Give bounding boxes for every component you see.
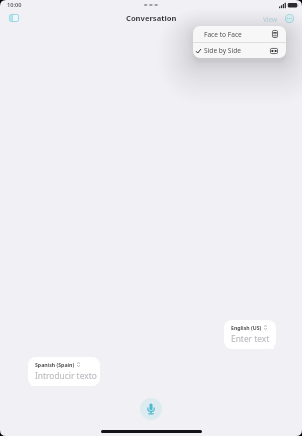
button[interactable]: English (US) (224, 320, 276, 349)
button[interactable]: View (263, 15, 277, 24)
button[interactable]: Record speech (140, 398, 162, 420)
staticText: Face to Face (204, 30, 242, 39)
staticText: Side by Side (204, 46, 241, 55)
staticText: Spanish (Spain) (35, 361, 75, 368)
staticText: Introducir texto (35, 370, 97, 381)
button[interactable]: Side by Side (193, 43, 286, 58)
staticText: 10:00 (7, 1, 22, 9)
staticText: English (US) (231, 324, 262, 331)
button[interactable]: Face to Face (193, 26, 286, 42)
staticText: View (263, 15, 277, 24)
button[interactable]: Spanish (Spain) (28, 357, 100, 386)
button[interactable]: Show sidebar (6, 11, 22, 24)
button[interactable]: More options (284, 13, 295, 24)
staticText: Conversation (126, 13, 177, 23)
staticText: Enter text (231, 333, 270, 344)
